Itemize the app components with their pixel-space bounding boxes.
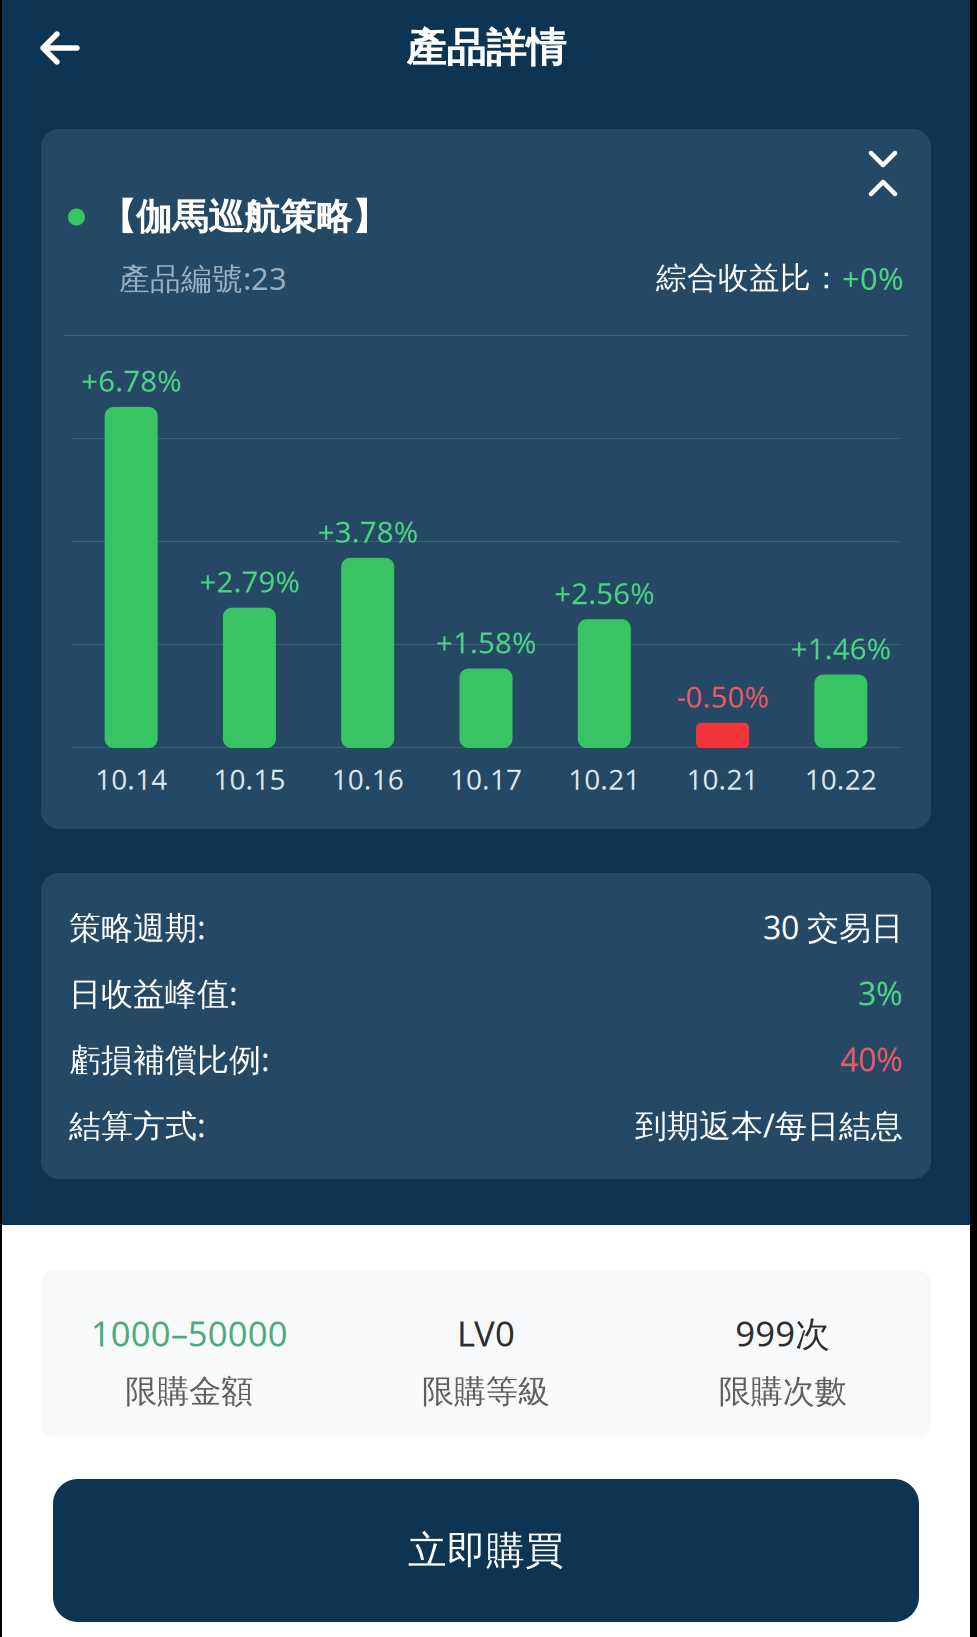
button[interactable]: Back xyxy=(2,13,98,83)
staticText: +2.79% xyxy=(199,562,299,601)
staticText: -0.50% xyxy=(677,677,769,716)
button[interactable]: 立即購買 xyxy=(53,1479,919,1622)
staticText: 產品詳情 xyxy=(406,23,566,72)
staticText: 999次 xyxy=(735,1310,830,1356)
staticText: 1000–50000 xyxy=(91,1310,288,1356)
staticText: 10.14 xyxy=(95,760,167,798)
staticText: 策略週期: xyxy=(69,906,206,948)
staticText: 10.17 xyxy=(450,760,522,798)
staticText: 10.16 xyxy=(332,760,404,798)
staticText: 10.21 xyxy=(568,760,640,798)
staticText: 限購次數 xyxy=(719,1372,847,1411)
staticText: 限購等級 xyxy=(422,1372,550,1411)
staticText: 10.22 xyxy=(805,760,877,798)
staticText: 10.21 xyxy=(687,760,759,798)
staticText: 立即購買 xyxy=(408,1527,564,1574)
staticText: +0% xyxy=(842,258,903,298)
staticText: 10.15 xyxy=(213,760,285,798)
staticText: 產品編號:23 xyxy=(119,258,287,298)
staticText: 【伽馬巡航策略】 xyxy=(100,195,388,239)
staticText: 虧損補償比例: xyxy=(69,1038,270,1080)
staticText: 綜合收益比： xyxy=(656,259,842,297)
staticText: 3% xyxy=(858,972,903,1014)
staticText: +6.78% xyxy=(81,361,181,400)
staticText: 到期返本/每日結息 xyxy=(635,1104,903,1146)
staticText: 日收益峰值: xyxy=(69,972,238,1014)
staticText: 30 交易日 xyxy=(763,906,903,948)
staticText: +3.78% xyxy=(318,512,418,551)
staticText: LV0 xyxy=(457,1310,515,1356)
staticText: +1.46% xyxy=(791,629,891,668)
staticText: 限購金額 xyxy=(125,1372,253,1411)
staticText: +2.56% xyxy=(554,573,654,612)
staticText: 結算方式: xyxy=(69,1104,206,1146)
staticText: +1.58% xyxy=(436,623,536,662)
button[interactable]: Collapse xyxy=(851,129,931,214)
staticText: 40% xyxy=(840,1038,903,1080)
